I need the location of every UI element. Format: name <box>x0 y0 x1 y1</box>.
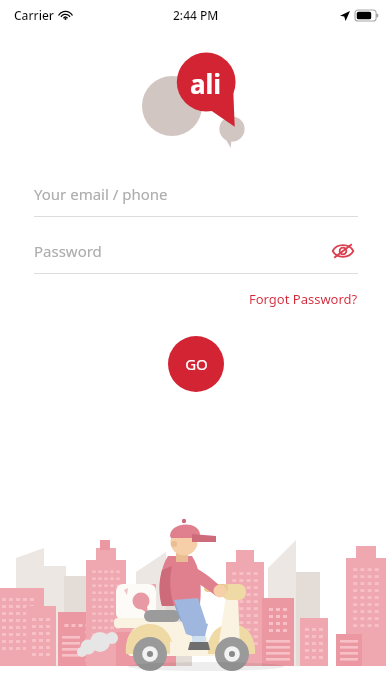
staticText: GO <box>185 354 208 374</box>
staticText: Carrier <box>14 7 54 23</box>
button[interactable]: Your email / phone <box>34 172 358 216</box>
button[interactable]: Password <box>34 229 358 273</box>
staticText: ali <box>190 66 222 101</box>
staticText: Forgot Password? <box>249 290 358 308</box>
staticText: Your email / phone <box>34 184 168 204</box>
button[interactable]: GO <box>168 336 224 392</box>
staticText: 2:44 PM <box>173 7 219 23</box>
staticText: Password <box>34 241 102 261</box>
button[interactable]: Show password <box>328 236 358 266</box>
button[interactable]: Forgot Password? <box>241 284 366 314</box>
